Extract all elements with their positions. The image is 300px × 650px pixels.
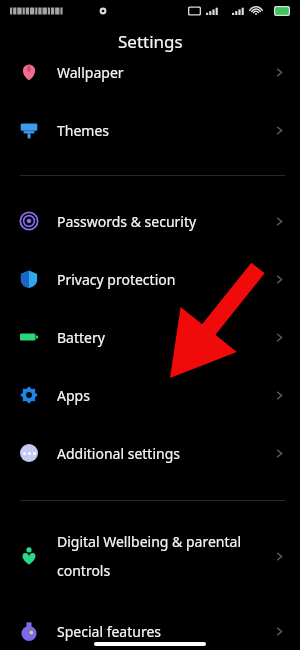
other: Privacy protection <box>20 270 38 288</box>
button[interactable]: Battery <box>0 308 300 366</box>
button[interactable]: Apps <box>0 366 300 424</box>
staticText: Settings <box>118 30 183 53</box>
button[interactable]: Additional settings <box>0 424 300 482</box>
other: Themes <box>20 121 38 139</box>
staticText: Special features <box>57 622 162 641</box>
staticText: Additional settings <box>57 444 180 463</box>
other: Battery <box>20 328 38 346</box>
other: Digital Wellbeing <box>20 547 38 565</box>
staticText: Privacy protection <box>57 270 176 289</box>
other: Additional settings <box>20 444 38 462</box>
staticText: controls <box>57 561 111 580</box>
staticText: Themes <box>57 121 110 140</box>
staticText: Wallpaper <box>57 63 124 82</box>
other: Passwords and security <box>20 212 38 230</box>
button[interactable]: Digital Wellbeing <box>0 518 300 594</box>
staticText: Passwords & security <box>57 212 197 231</box>
other: Wallpaper <box>20 63 38 81</box>
button[interactable]: Themes <box>0 101 300 159</box>
staticText: Apps <box>57 386 90 405</box>
button[interactable]: Wallpaper <box>0 43 300 101</box>
staticText: Digital Wellbeing & parental <box>57 532 242 551</box>
other: Apps <box>20 386 38 404</box>
staticText: Battery <box>57 328 105 347</box>
button[interactable]: Passwords and security <box>0 192 300 250</box>
button[interactable]: Special features <box>0 602 300 650</box>
button[interactable]: Privacy protection <box>0 250 300 308</box>
other: Special features <box>20 622 38 640</box>
